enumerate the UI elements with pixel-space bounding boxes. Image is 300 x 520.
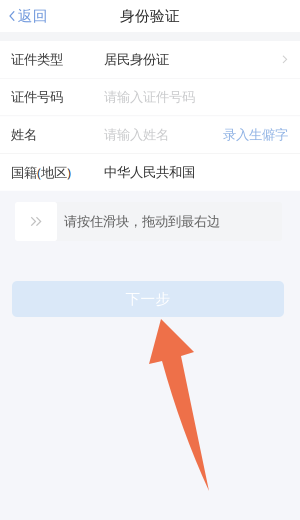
button[interactable]: 下一步 bbox=[12, 281, 284, 317]
staticText: 中华人民共和国 bbox=[104, 164, 195, 180]
button[interactable]: 请按住滑块，拖动到最右边 bbox=[15, 202, 282, 241]
staticText: 居民身份证 bbox=[104, 51, 169, 68]
staticText: 证件号码 bbox=[11, 89, 63, 105]
button[interactable]: 国籍(地区) bbox=[0, 154, 300, 191]
staticText: 返回 bbox=[18, 7, 48, 25]
button[interactable]: 返回 bbox=[0, 0, 56, 32]
staticText: 录入生僻字 bbox=[223, 126, 288, 143]
staticText: 国籍(地区) bbox=[11, 163, 71, 181]
button[interactable]: 姓名 bbox=[0, 116, 300, 153]
staticText: 身份验证 bbox=[120, 7, 180, 25]
staticText: 请按住滑块，拖动到最右边 bbox=[64, 213, 220, 230]
staticText: 证件类型 bbox=[11, 51, 63, 68]
button[interactable]: 证件号码 bbox=[0, 79, 300, 116]
staticText: 请输入证件号码 bbox=[104, 89, 195, 105]
staticText: 下一步 bbox=[125, 290, 170, 308]
staticText: 姓名 bbox=[11, 126, 37, 143]
button[interactable]: 证件类型 bbox=[0, 41, 300, 78]
staticText: 请输入姓名 bbox=[104, 126, 169, 143]
